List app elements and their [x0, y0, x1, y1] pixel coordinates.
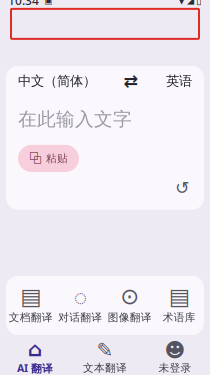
staticText: 10:34: [8, 0, 39, 8]
staticText: ▼: [178, 0, 185, 6]
staticText: ▣: [44, 0, 53, 6]
staticText: AI 翻译: [17, 361, 53, 375]
staticText: 未登录: [158, 361, 191, 375]
staticText: 中文（简体）: [18, 73, 96, 89]
button[interactable]: ⧉: [18, 145, 79, 172]
staticText: ↺: [175, 178, 190, 198]
staticText: ✎: [96, 339, 113, 361]
button[interactable]: Swap languages: [117, 67, 144, 95]
staticText: ◌: [74, 281, 87, 311]
button[interactable]: ☻: [140, 341, 210, 375]
button[interactable]: ▤: [154, 285, 204, 326]
button[interactable]: 中文（简体）: [18, 67, 96, 95]
staticText: ⇄: [123, 71, 138, 91]
staticText: ☻: [164, 339, 185, 361]
staticText: ⌂: [28, 338, 42, 361]
staticText: 在此输入文字: [18, 108, 132, 131]
staticText: ▤: [20, 283, 41, 309]
button[interactable]: 英语: [166, 67, 192, 95]
staticText: 英语: [166, 73, 192, 89]
staticText: ⧉: [29, 151, 42, 166]
staticText: ▤: [169, 283, 190, 309]
button[interactable]: History: [169, 172, 196, 204]
button[interactable]: ⌂: [0, 341, 70, 375]
staticText: ▯: [196, 0, 202, 6]
staticText: ⊙: [120, 283, 139, 309]
staticText: 粘贴: [46, 152, 68, 165]
staticText: 图像翻译: [108, 311, 152, 324]
staticText: 文本翻译: [83, 361, 127, 375]
staticText: ◢: [187, 0, 194, 6]
staticText: 术语库: [163, 311, 196, 324]
button[interactable]: ⊙: [105, 285, 154, 326]
staticText: 文档翻译: [9, 311, 53, 324]
button[interactable]: ▤: [6, 285, 55, 326]
button[interactable]: ◌: [55, 285, 105, 326]
button[interactable]: ✎: [70, 341, 140, 375]
staticText: 对话翻译: [58, 311, 102, 324]
